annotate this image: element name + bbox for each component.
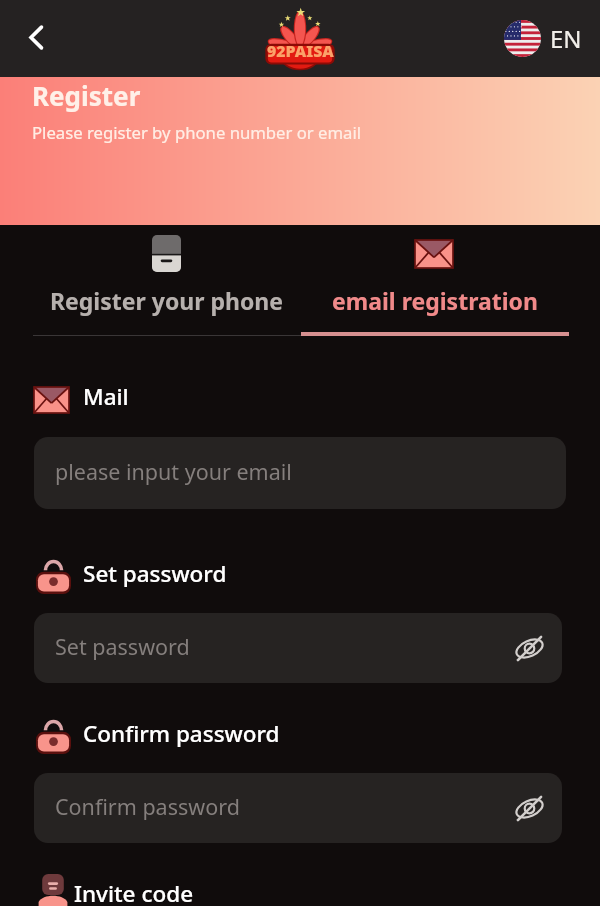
staticText: Invite code [74,878,194,906]
button[interactable]: Confirm password [34,773,562,843]
staticText: Please register by phone number or email [32,121,362,144]
button[interactable]: Register your phone [33,228,300,332]
button[interactable]: email registration [301,228,568,332]
button[interactable]: Show password [513,632,545,664]
button[interactable]: please input your email [34,437,566,509]
staticText: 92PAISA [267,40,334,62]
button[interactable]: Show password [513,792,545,824]
staticText: Mail [83,381,129,412]
staticText: Register [32,78,141,113]
staticText: Set password [83,558,227,589]
staticText: EN [550,22,582,55]
button[interactable]: Set password [34,613,562,683]
staticText: Confirm password [83,718,280,749]
staticText: Confirm password [55,792,240,821]
staticText: please input your email [55,457,292,486]
button[interactable]: EN [504,20,582,57]
staticText: Set password [55,632,190,661]
staticText: Register your phone [50,285,284,316]
button[interactable]: Back [14,15,58,59]
staticText: email registration [332,285,538,316]
